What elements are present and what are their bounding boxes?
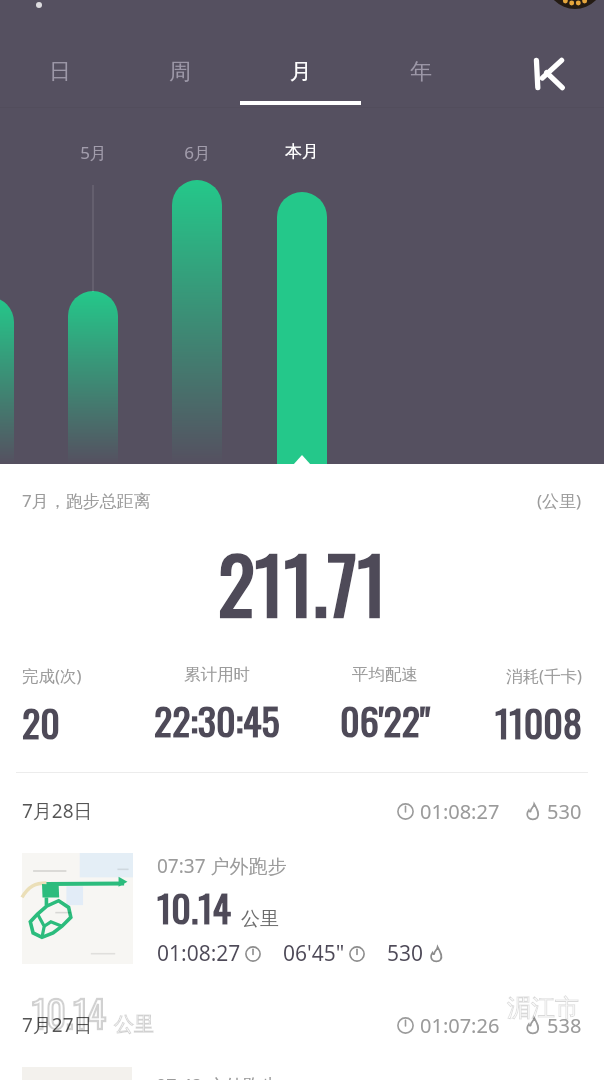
staticText: 538: [547, 1012, 582, 1039]
button[interactable]: 日: [0, 0, 120, 108]
staticText: 20: [22, 694, 60, 744]
staticText: 07:37 户外跑步: [157, 853, 287, 879]
staticText: 日: [49, 58, 71, 86]
staticText: (公里): [537, 489, 582, 512]
staticText: 完成(次): [22, 664, 82, 687]
button[interactable]: 7月27日: [22, 987, 582, 1063]
staticText: 211.71: [218, 525, 387, 639]
staticText: 累计用时: [184, 664, 250, 685]
staticText: 5月: [80, 141, 107, 164]
staticText: 公里: [114, 1012, 154, 1037]
staticText: 湄江市: [507, 993, 579, 1023]
staticText: 年: [410, 58, 432, 86]
staticText: 11008: [495, 694, 582, 744]
staticText: 530: [547, 798, 582, 825]
button[interactable]: 月: [240, 0, 361, 108]
staticText: 周: [169, 58, 191, 86]
staticText: 月: [290, 58, 312, 86]
button[interactable]: 07:37 户外跑步: [22, 853, 582, 968]
staticText: 01:07:26: [420, 1012, 500, 1039]
staticText: 消耗(千卡): [506, 664, 582, 687]
button[interactable]: 周: [120, 0, 240, 108]
button[interactable]: 年: [361, 0, 481, 108]
staticText: 07:42 户外跑步: [156, 1073, 279, 1080]
staticText: 6月: [184, 141, 211, 164]
staticText: 7月27日: [22, 1012, 93, 1038]
button[interactable]: 07:42 户外跑步: [22, 1067, 582, 1080]
staticText: 本月: [285, 141, 319, 162]
staticText: 01:08:27: [157, 939, 241, 968]
staticText: 平均配速: [352, 664, 418, 685]
staticText: 10.14: [157, 879, 231, 935]
staticText: 公里: [241, 907, 279, 931]
staticText: 22:30:45: [154, 692, 280, 744]
staticText: 7月，跑步总距离: [22, 489, 151, 512]
staticText: 530: [387, 939, 424, 968]
staticText: 7月28日: [22, 798, 93, 824]
button[interactable]: Keep: [481, 0, 604, 108]
button[interactable]: 7月28日: [22, 773, 582, 849]
staticText: 06'22": [340, 692, 431, 744]
staticText: 06'45": [283, 939, 345, 968]
staticText: 10.14: [32, 984, 106, 1040]
staticText: 01:08:27: [420, 798, 500, 825]
